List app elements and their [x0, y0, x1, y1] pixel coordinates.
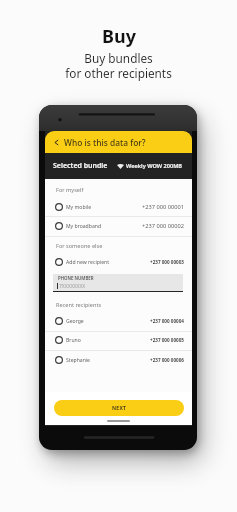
staticText: PHONE NUMBER [58, 275, 94, 281]
staticText: Buy bundles for other recipients [65, 50, 172, 81]
button[interactable]: NEXT [54, 400, 184, 416]
other: Back [54, 140, 59, 145]
staticText: 7XXXXXXXX [59, 283, 86, 290]
staticText: Add new recipient [66, 259, 110, 266]
staticText: +237 000 00003 [150, 259, 184, 265]
staticText: NEXT [112, 405, 127, 412]
staticText: For someone else [56, 242, 103, 250]
staticText: +237 000 00004 [150, 318, 184, 324]
staticText: George [66, 318, 84, 325]
staticText: My mobile [66, 204, 92, 211]
button[interactable]: My broadband [45, 218, 192, 234]
staticText: Recent recipients [56, 301, 102, 309]
staticText: Who is this data for? [64, 137, 146, 148]
staticText: +237 000 00001 [142, 203, 184, 211]
staticText: +237 000 00002 [142, 222, 184, 230]
staticText: Bruno [66, 337, 81, 344]
staticText: +237 000 00005 [150, 337, 184, 343]
staticText: Selected bundle [53, 161, 108, 171]
staticText: My broadband [66, 223, 102, 230]
button[interactable]: PHONE NUMBER [53, 274, 183, 292]
staticText: Buy [102, 24, 136, 49]
button[interactable]: Add new recipient [45, 254, 192, 270]
staticText: Weekly WOW 200MB [126, 162, 183, 170]
staticText: Stephanie [66, 357, 90, 364]
staticText: For myself [56, 186, 84, 194]
button[interactable]: Back [45, 131, 192, 153]
button[interactable]: Stephanie [45, 352, 192, 368]
button[interactable]: George [45, 313, 192, 329]
button[interactable]: Bruno [45, 332, 192, 348]
button[interactable]: My mobile [45, 199, 192, 215]
staticText: +237 000 00006 [150, 357, 184, 363]
